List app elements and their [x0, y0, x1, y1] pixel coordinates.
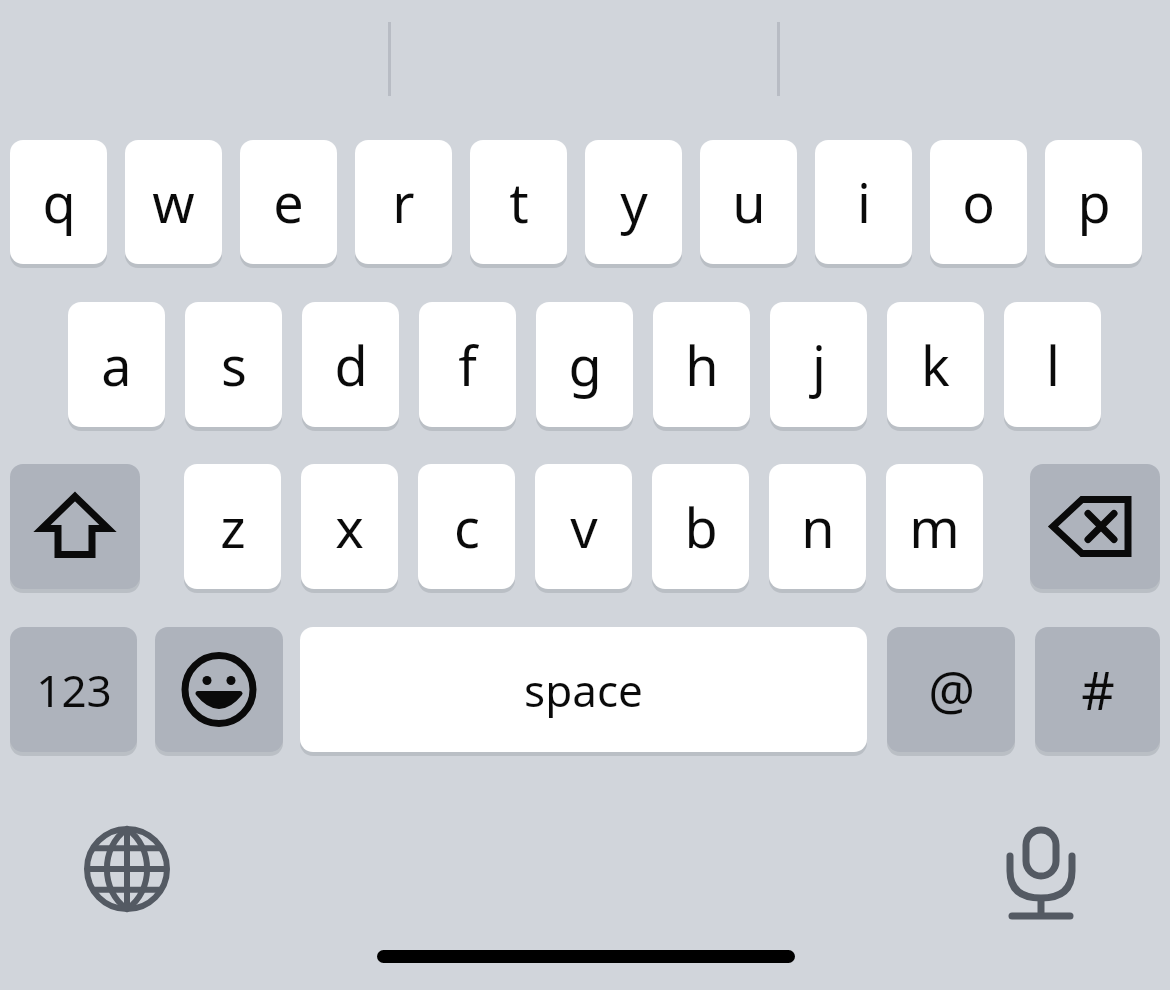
button[interactable]: r	[355, 140, 452, 264]
button[interactable]: space	[300, 627, 867, 752]
staticText: u	[732, 165, 766, 239]
button[interactable]: a	[68, 302, 165, 427]
staticText: s	[221, 328, 247, 402]
button[interactable]: v	[535, 464, 632, 589]
staticText: b	[684, 490, 718, 564]
staticText: space	[524, 660, 643, 720]
staticText: p	[1077, 165, 1111, 239]
button[interactable]: c	[418, 464, 515, 589]
button[interactable]: f	[419, 302, 516, 427]
staticText: k	[921, 328, 950, 402]
staticText: c	[454, 490, 480, 564]
button[interactable]: e	[240, 140, 337, 264]
staticText: a	[101, 328, 132, 402]
button[interactable]: @	[887, 627, 1015, 752]
button[interactable]: t	[470, 140, 567, 264]
button[interactable]: y	[585, 140, 682, 264]
staticText: v	[570, 490, 598, 564]
staticText: m	[909, 490, 960, 564]
button[interactable]: b	[652, 464, 749, 589]
staticText: w	[152, 165, 195, 239]
button[interactable]: Dictation	[996, 824, 1086, 914]
button[interactable]: Switch keyboard language	[82, 824, 172, 914]
staticText: r	[392, 165, 415, 239]
button[interactable]: o	[930, 140, 1027, 264]
staticText: i	[857, 165, 871, 239]
staticText: e	[273, 165, 304, 239]
staticText: g	[568, 328, 602, 402]
button[interactable]: j	[770, 302, 867, 427]
staticText: x	[335, 490, 364, 564]
staticText: #	[1081, 654, 1115, 725]
button[interactable]: x	[301, 464, 398, 589]
staticText: o	[962, 165, 995, 239]
button[interactable]: p	[1045, 140, 1142, 264]
button[interactable]: d	[302, 302, 399, 427]
staticText: @	[928, 654, 975, 725]
button[interactable]: i	[815, 140, 912, 264]
button[interactable]: u	[700, 140, 797, 264]
staticText: f	[458, 328, 477, 402]
button[interactable]: k	[887, 302, 984, 427]
staticText: 123	[36, 660, 112, 720]
staticText: d	[334, 328, 368, 402]
staticText: t	[509, 165, 529, 239]
button[interactable]: q	[10, 140, 107, 264]
button[interactable]: s	[185, 302, 282, 427]
staticText: z	[220, 490, 246, 564]
button[interactable]: Shift	[10, 464, 140, 589]
button[interactable]: Backspace	[1030, 464, 1160, 589]
staticText: j	[812, 328, 826, 402]
button[interactable]: w	[125, 140, 222, 264]
staticText: n	[801, 490, 835, 564]
staticText: h	[685, 328, 719, 402]
button[interactable]: m	[886, 464, 983, 589]
staticText: q	[42, 165, 76, 239]
button[interactable]: l	[1004, 302, 1101, 427]
button[interactable]: h	[653, 302, 750, 427]
button[interactable]: Emoji	[155, 627, 283, 752]
button[interactable]: g	[536, 302, 633, 427]
button[interactable]: #	[1035, 627, 1160, 752]
staticText: l	[1046, 328, 1060, 402]
button[interactable]: z	[184, 464, 281, 589]
button[interactable]: 123	[10, 627, 137, 752]
staticText: y	[620, 165, 648, 239]
button[interactable]: n	[769, 464, 866, 589]
